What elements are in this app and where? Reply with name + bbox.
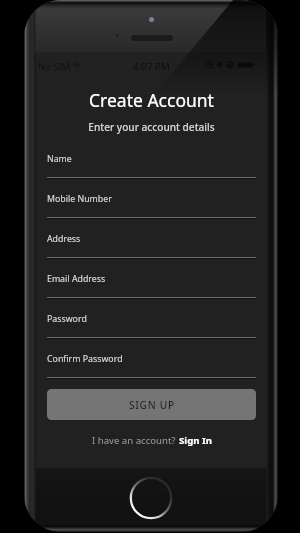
staticText: Name [47, 153, 72, 165]
staticText: No SIM [38, 60, 71, 73]
button[interactable]: Confirm Password [47, 353, 256, 381]
staticText: Confirm Password [47, 353, 123, 365]
button[interactable]: Address [47, 233, 256, 261]
staticText: Create Account [36, 88, 267, 112]
button[interactable]: SIGN UP [47, 389, 256, 420]
staticText: I have an account? [92, 434, 176, 447]
staticText: Enter your account details [36, 120, 267, 134]
other: Home [129, 476, 173, 520]
button[interactable]: Email Address [47, 273, 256, 301]
staticText: Address [47, 233, 81, 245]
button[interactable]: Sign In [179, 434, 212, 447]
button[interactable]: Password [47, 313, 256, 341]
staticText: Email Address [47, 273, 106, 285]
button[interactable]: Name [47, 153, 256, 181]
staticText: SIGN UP [129, 398, 175, 412]
button[interactable]: Mobile Number [47, 193, 256, 221]
staticText: Password [47, 313, 87, 325]
staticText: 4:07 PM [36, 60, 267, 73]
staticText: Sign In [179, 434, 212, 447]
staticText: Mobile Number [47, 193, 112, 205]
